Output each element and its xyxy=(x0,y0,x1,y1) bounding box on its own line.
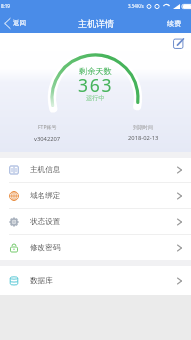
button[interactable]: 编辑 xyxy=(172,37,185,50)
button[interactable]: 主机信息 xyxy=(0,158,191,182)
button[interactable]: 数据库 xyxy=(0,266,191,295)
staticText: FTP账号 xyxy=(38,124,57,131)
staticText: 域名绑定 xyxy=(30,191,61,201)
staticText: 剩余天数 xyxy=(79,66,112,76)
staticText: 数据库 xyxy=(30,276,53,286)
button[interactable]: 域名绑定 xyxy=(0,183,191,208)
staticText: 主机信息 xyxy=(30,165,61,175)
staticText: 到期时间 xyxy=(133,124,153,130)
button[interactable]: 状态设置 xyxy=(0,209,191,234)
button[interactable]: 修改密码 xyxy=(0,235,191,260)
staticText: 返回 xyxy=(13,19,26,27)
staticText: 8:19 xyxy=(1,3,10,9)
staticText: 3.54K/s xyxy=(128,3,144,9)
staticText: 状态设置 xyxy=(30,217,61,227)
button[interactable]: 返回 xyxy=(0,13,32,33)
staticText: 续费 xyxy=(167,19,181,28)
staticText: 主机详情 xyxy=(78,18,114,29)
staticText: 2018-02-13 xyxy=(128,134,159,142)
button[interactable]: 续费 xyxy=(159,13,191,33)
staticText: 运行中 xyxy=(86,94,105,102)
staticText: 修改密码 xyxy=(30,243,61,253)
staticText: v3042207 xyxy=(34,135,61,143)
staticText: 363 xyxy=(78,73,114,97)
